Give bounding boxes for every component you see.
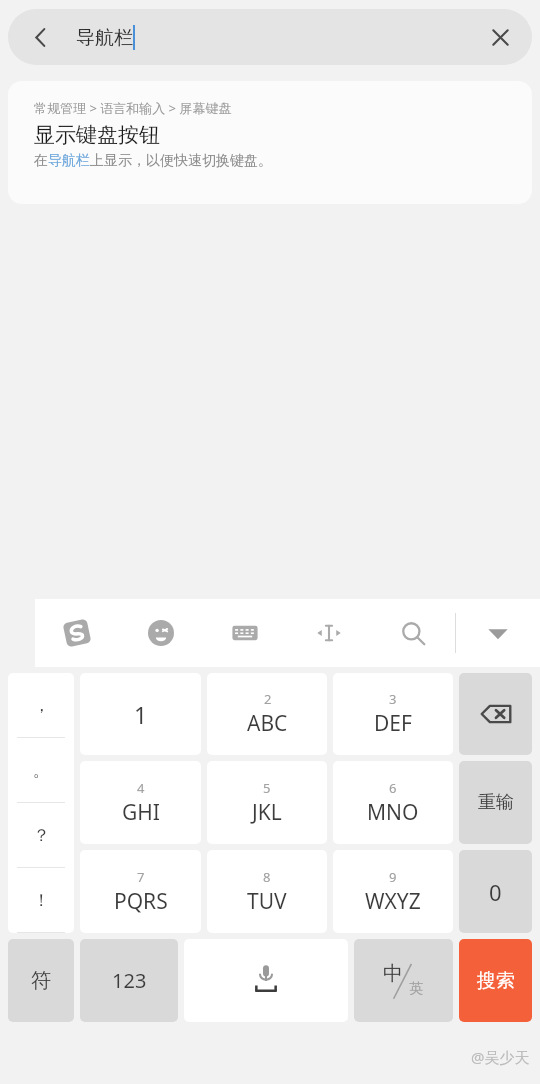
button[interactable]: 8 bbox=[207, 850, 327, 933]
staticText: 显示键盘按钮 bbox=[34, 122, 160, 148]
staticText: @吴少天 bbox=[471, 1047, 530, 1067]
button[interactable]: 6 bbox=[333, 761, 453, 844]
button[interactable]: Move cursor bbox=[287, 599, 371, 667]
button[interactable]: 7 bbox=[80, 850, 201, 933]
staticText: 2 bbox=[264, 690, 272, 708]
button[interactable]: 3 bbox=[333, 673, 453, 755]
staticText: 0 bbox=[489, 877, 502, 907]
staticText: ！ bbox=[33, 890, 50, 911]
staticText: ， bbox=[33, 695, 50, 716]
button[interactable]: 0 bbox=[459, 850, 532, 933]
button[interactable]: Sogou input bbox=[35, 599, 119, 667]
button[interactable]: Back bbox=[16, 13, 64, 61]
staticText: 123 bbox=[112, 967, 147, 994]
staticText: 8 bbox=[263, 868, 271, 886]
staticText: PQRS bbox=[114, 887, 168, 916]
button[interactable]: Clear search bbox=[476, 13, 524, 61]
staticText: JKL bbox=[252, 798, 282, 827]
button[interactable]: 符 bbox=[8, 939, 74, 1022]
staticText: GHI bbox=[122, 798, 160, 827]
button[interactable]: 常规管理 > 语言和输入 > 屏幕键盘 bbox=[8, 81, 532, 204]
button[interactable]: 123 bbox=[80, 939, 178, 1022]
staticText: WXYZ bbox=[365, 887, 421, 916]
staticText: 4 bbox=[137, 779, 145, 797]
staticText: ？ bbox=[33, 825, 50, 846]
staticText: 符 bbox=[31, 968, 51, 993]
button[interactable]: Keyboard layout bbox=[203, 599, 287, 667]
staticText: 9 bbox=[389, 868, 397, 886]
staticText: DEF bbox=[374, 709, 412, 738]
button[interactable]: 1 bbox=[80, 673, 201, 755]
staticText: 7 bbox=[137, 868, 145, 886]
staticText: 。 bbox=[33, 760, 50, 781]
button[interactable]: More bbox=[456, 599, 540, 667]
staticText: 在导航栏上显示，以便快速切换键盘。 bbox=[34, 152, 272, 170]
staticText: MNO bbox=[367, 798, 419, 827]
staticText: 导航栏 bbox=[76, 26, 133, 50]
staticText: 6 bbox=[389, 779, 397, 797]
button[interactable]: Backspace bbox=[459, 673, 532, 755]
staticText: 中 bbox=[383, 961, 403, 986]
button[interactable]: 2 bbox=[207, 673, 327, 755]
staticText: 搜索 bbox=[477, 969, 515, 993]
button[interactable]: Search bbox=[371, 599, 455, 667]
button[interactable]: 重输 bbox=[459, 761, 532, 844]
button[interactable]: Space bbox=[184, 939, 348, 1022]
staticText: 常规管理 > 语言和输入 > 屏幕键盘 bbox=[34, 99, 232, 117]
staticText: 英 bbox=[409, 980, 423, 998]
button[interactable]: 搜索 bbox=[459, 939, 532, 1022]
button[interactable]: Emoji bbox=[119, 599, 203, 667]
staticText: 5 bbox=[263, 779, 271, 797]
button[interactable]: ， bbox=[8, 673, 74, 933]
button[interactable]: Switch language bbox=[354, 939, 453, 1022]
button[interactable]: 5 bbox=[207, 761, 327, 844]
staticText: TUV bbox=[247, 887, 287, 916]
staticText: 3 bbox=[389, 690, 397, 708]
button[interactable]: 9 bbox=[333, 850, 453, 933]
staticText: 1 bbox=[134, 699, 148, 730]
staticText: 重输 bbox=[478, 791, 514, 814]
button[interactable]: 4 bbox=[80, 761, 201, 844]
staticText: ABC bbox=[247, 709, 288, 738]
